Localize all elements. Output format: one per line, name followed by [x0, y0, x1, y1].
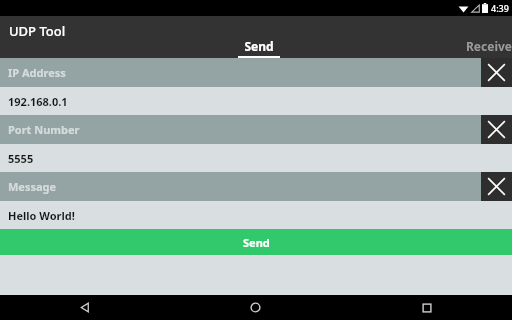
staticText: 5555 [8, 151, 34, 166]
button[interactable]: Clear Message [481, 172, 512, 201]
staticText: Port Number [8, 122, 80, 137]
button[interactable]: Clear IP Address [481, 58, 512, 87]
staticText: Hello World! [8, 208, 75, 223]
button[interactable]: 192.168.0.1 [0, 87, 512, 115]
staticText: Send [244, 38, 274, 54]
staticText: Send [243, 235, 270, 250]
button[interactable]: Send [236, 38, 282, 58]
button[interactable]: Send [0, 229, 512, 255]
button[interactable]: Clear Port Number [481, 115, 512, 144]
button[interactable]: Recent apps [341, 295, 512, 320]
button[interactable]: Hello World! [0, 201, 512, 229]
staticText: IP Address [8, 65, 66, 80]
staticText: 4:39 [491, 2, 509, 14]
button[interactable]: Receive [466, 38, 512, 58]
button[interactable]: Back [0, 295, 170, 320]
button[interactable]: 5555 [0, 144, 512, 172]
staticText: Message [8, 179, 57, 194]
button[interactable]: Home [170, 295, 341, 320]
staticText: 192.168.0.1 [8, 94, 68, 109]
staticText: Receive [466, 38, 512, 54]
staticText: UDP Tool [9, 22, 66, 40]
